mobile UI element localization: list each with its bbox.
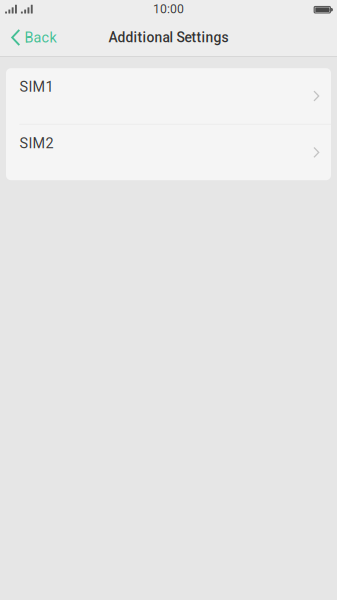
staticText: Back	[25, 29, 57, 46]
button[interactable]: SIM1	[6, 68, 331, 124]
staticText: Additional Settings	[108, 29, 228, 46]
staticText: SIM1	[19, 78, 53, 95]
staticText: SIM2	[19, 135, 53, 152]
button[interactable]: SIM2	[6, 125, 331, 180]
staticText: 10:00	[153, 2, 184, 16]
button[interactable]: Back	[0, 22, 67, 53]
